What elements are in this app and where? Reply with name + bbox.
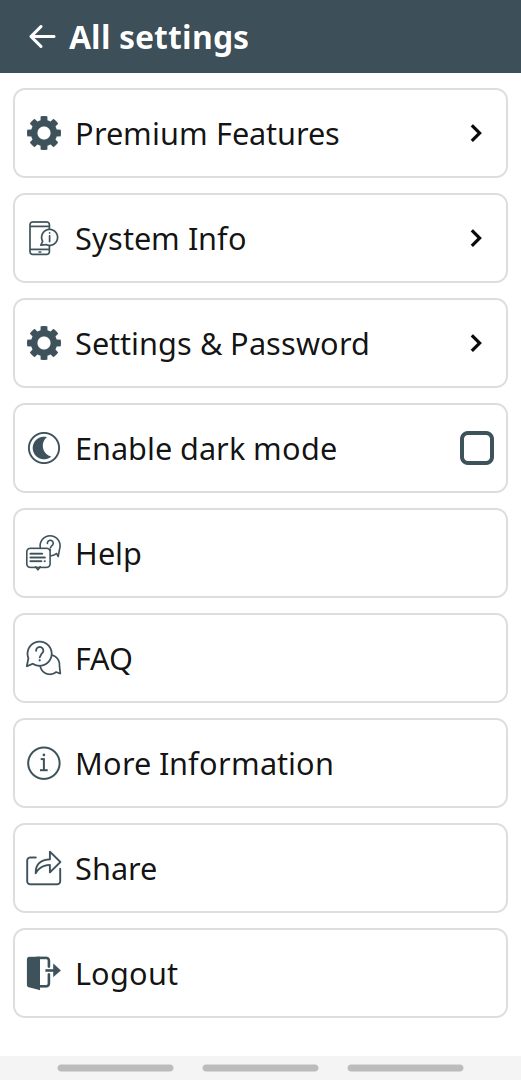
staticText: FAQ [75,638,133,678]
button[interactable]: Help [14,509,507,597]
button[interactable]: Share [14,824,507,912]
staticText: Settings & Password [75,323,370,363]
button[interactable]: FAQ [14,614,507,702]
staticText: Help [75,533,142,573]
staticText: Enable dark mode [75,428,337,468]
button[interactable]: Premium Features [14,89,507,177]
button[interactable]: System Info [14,194,507,282]
staticText: Share [75,848,157,888]
button[interactable]: More Information [14,719,507,807]
staticText: Premium Features [75,113,340,153]
button[interactable]: Settings & Password [14,299,507,387]
staticText: Logout [75,953,178,993]
button[interactable]: Back [0,2,69,70]
staticText: System Info [75,218,247,258]
staticText: More Information [75,743,334,783]
button[interactable]: Enable dark mode [14,404,507,492]
staticText: All settings [69,15,249,58]
button[interactable]: Logout [14,929,507,1017]
